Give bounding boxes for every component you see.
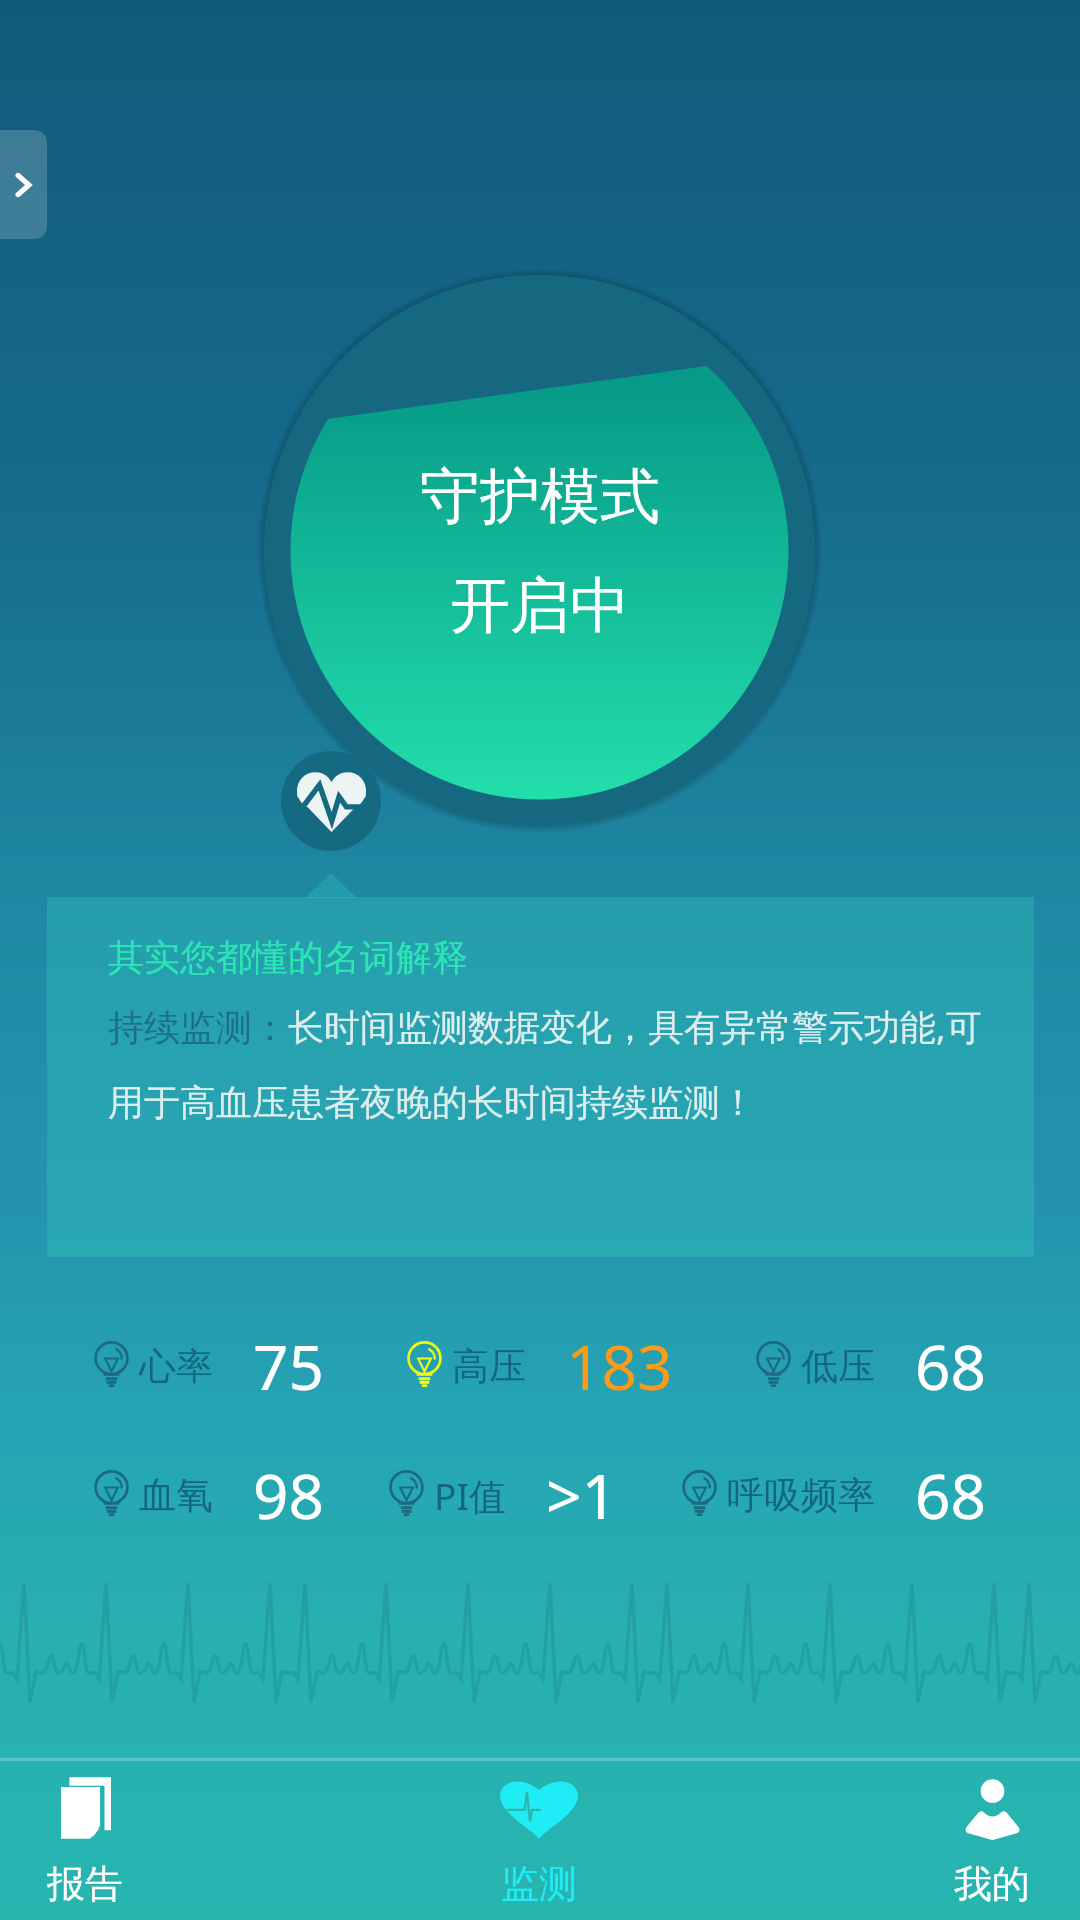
button[interactable]: 报告: [47, 1761, 123, 1920]
staticText: 呼吸频率: [727, 1472, 875, 1519]
button[interactable]: 监测: [500, 1761, 578, 1920]
staticText: 183: [566, 1324, 673, 1408]
staticText: 68: [915, 1453, 986, 1537]
button[interactable]: 低压: [756, 1305, 986, 1427]
button[interactable]: 其实您都懂的名词解释: [47, 897, 1034, 1257]
button[interactable]: 血氧: [94, 1434, 324, 1556]
staticText: 68: [915, 1324, 986, 1408]
staticText: 开启中: [450, 568, 630, 644]
button[interactable]: 我的: [954, 1761, 1030, 1920]
staticText: 心率: [139, 1343, 213, 1390]
button[interactable]: 呼吸频率: [682, 1434, 986, 1556]
button[interactable]: Expand panel: [0, 130, 47, 239]
staticText: 其实您都懂的名词解释: [108, 935, 468, 980]
button[interactable]: 心率: [94, 1305, 324, 1427]
button[interactable]: PI值: [389, 1434, 617, 1556]
staticText: 75: [253, 1324, 324, 1408]
button[interactable]: 高压: [407, 1305, 673, 1427]
staticText: 98: [253, 1453, 324, 1537]
staticText: 高压: [452, 1343, 526, 1390]
staticText: 报告: [47, 1860, 123, 1908]
staticText: >1: [546, 1453, 617, 1537]
staticText: 血氧: [139, 1472, 213, 1519]
staticText: 监测: [501, 1860, 577, 1908]
staticText: 我的: [954, 1860, 1030, 1908]
staticText: 守护模式: [420, 459, 660, 535]
staticText: PI值: [434, 1470, 506, 1521]
staticText: 持续监测：长时间监测数据变化，具有异常警示功能,可用于高血压患者夜晚的长时间持续…: [108, 1002, 997, 1126]
button[interactable]: Heart rate: [281, 751, 381, 851]
staticText: 低压: [801, 1343, 875, 1390]
